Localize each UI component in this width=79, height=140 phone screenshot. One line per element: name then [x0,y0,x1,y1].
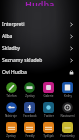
staticText: Tydlijak [43,134,54,138]
staticText: Feedly [25,134,35,138]
staticText: Nastavení [60,114,75,118]
staticText: Zprávy [6,134,16,138]
button[interactable]: Tydlijak [39,122,58,140]
button[interactable]: Twitter [39,102,58,122]
staticText: Zprávy [25,94,35,98]
button[interactable]: Alba [0,30,79,42]
staticText: Seznamy skladeb [2,57,43,64]
button[interactable]: Feedly [20,122,39,140]
staticText: Telefon [6,94,17,98]
other: Otevřít [69,34,74,39]
button[interactable]: Skladby [0,42,79,54]
button[interactable]: Oví Hudba [0,66,79,78]
button[interactable]: Interpreti [0,18,79,30]
staticText: Skladby [2,45,21,52]
button[interactable]: Seznamy skladeb [0,54,79,66]
button[interactable]: Zprávy [2,122,20,140]
button[interactable]: Telefon [2,82,20,102]
staticText: Galerie [43,94,54,98]
button[interactable]: Galerie [39,82,58,102]
staticText: Facebook [23,114,37,118]
button[interactable]: Knihy [58,82,77,102]
staticText: Poznámky [60,134,75,138]
other: Otevřít [69,46,74,51]
staticText: Hudba [25,0,55,6]
staticText: Oví Hudba [2,69,27,76]
button[interactable]: Nástroje [2,102,20,122]
staticText: Twitter [44,114,54,118]
staticText: Alba [2,33,13,40]
staticText: Interpreti [2,21,25,28]
other: Otevřít [69,22,74,27]
staticText: Nástroje [5,114,17,118]
other: Zamknout [69,70,74,75]
staticText: Knihy [64,94,72,98]
button[interactable]: Poznámky [58,122,77,140]
button[interactable]: Facebook [20,102,39,122]
button[interactable]: Zprávy [20,82,39,102]
other: Otevřít [69,58,74,63]
button[interactable]: Nastavení [58,102,77,122]
